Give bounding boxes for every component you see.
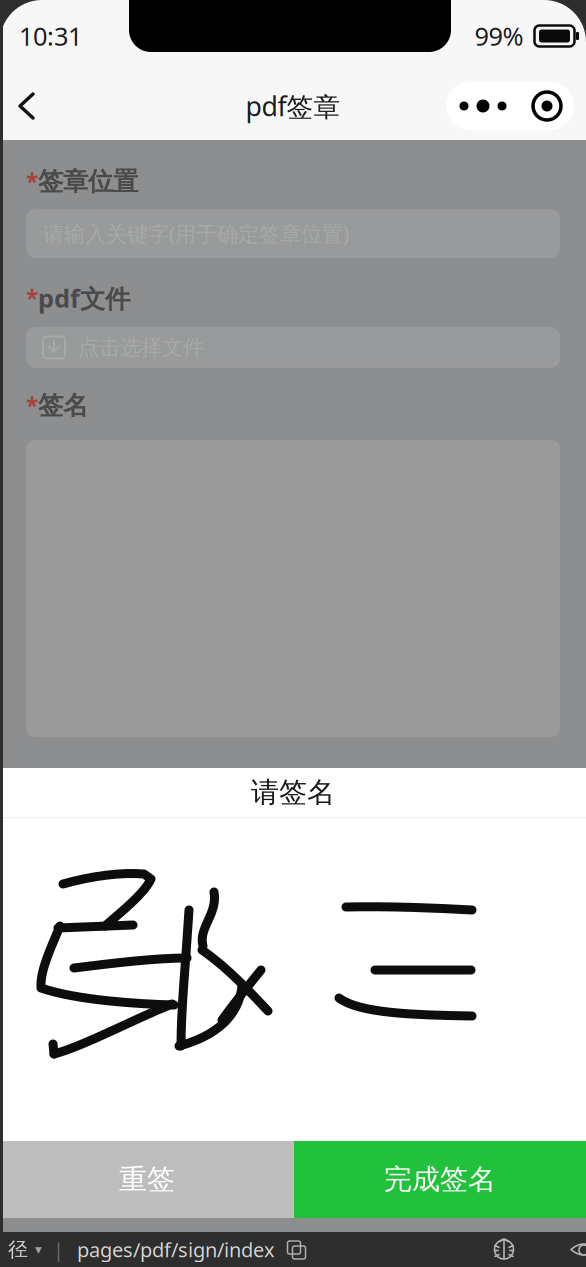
staticText: pdf文件	[38, 281, 130, 315]
staticText: *	[26, 390, 38, 420]
button[interactable]: 完成签名	[294, 1141, 586, 1218]
staticText: 完成签名	[384, 1162, 496, 1197]
staticText: 径	[8, 1237, 28, 1262]
button[interactable]: Back	[0, 72, 52, 140]
staticText: 签章位置	[38, 166, 138, 197]
button[interactable]: More options	[446, 82, 574, 130]
staticText: 重签	[119, 1162, 175, 1197]
staticText: 10:31	[19, 19, 82, 53]
staticText: 点击选择文件	[78, 334, 204, 360]
staticText: *	[26, 166, 38, 197]
staticText: |	[53, 1236, 64, 1263]
staticText: pages/pdf/sign/index	[77, 1236, 275, 1263]
staticText: ▾	[35, 1242, 42, 1257]
staticText: 请输入关键字(用于确定签章位置)	[43, 219, 349, 248]
staticText: 99%	[474, 19, 523, 53]
staticText: 请签名	[251, 775, 335, 810]
staticText: 签名	[38, 390, 88, 421]
staticText: *	[26, 283, 38, 313]
button[interactable]: 重签	[0, 1141, 294, 1218]
staticText: pdf签章	[245, 88, 340, 124]
